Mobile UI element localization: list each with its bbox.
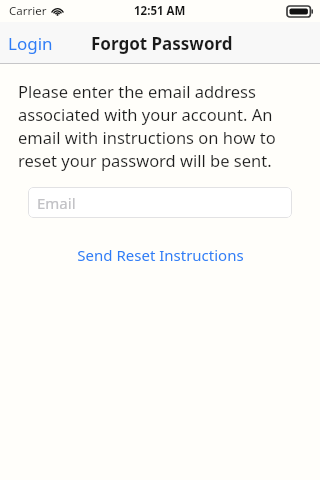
staticText: Login [8,32,53,55]
staticText: Please enter the email address associate… [18,80,294,172]
staticText: 12:51 AM [134,3,186,19]
staticText: Email [37,193,76,213]
staticText: Carrier [9,3,47,19]
staticText: Send Reset Instructions [77,245,244,265]
button[interactable]: Send Reset Instructions [63,241,258,269]
button[interactable]: Email [28,187,292,218]
staticText: Forgot Password [91,32,233,55]
button[interactable]: Login [0,26,61,61]
